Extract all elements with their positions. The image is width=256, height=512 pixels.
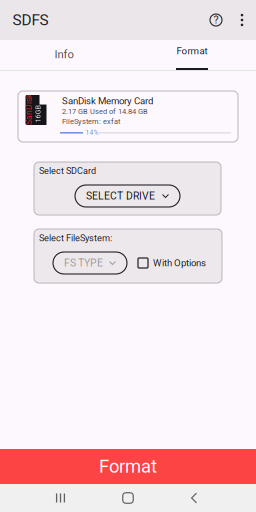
staticText: FileSystem: exfat [62, 117, 120, 126]
staticText: Select FileSystem: [39, 233, 112, 243]
staticText: ? [213, 13, 218, 26]
button[interactable]: FS TYPE [53, 252, 127, 274]
button[interactable]: Back [164, 484, 224, 512]
button[interactable]: Help [199, 0, 233, 40]
staticText: SELECT DRIVE [86, 190, 155, 202]
staticText: SanDisk Memory Card [62, 95, 153, 107]
button[interactable]: More options [227, 0, 256, 40]
staticText: Format [99, 456, 157, 477]
staticText: 16GB [29, 110, 46, 118]
staticText: 14% [85, 129, 98, 136]
staticText: SanDisk [13, 104, 44, 114]
button[interactable]: Format [0, 449, 256, 484]
staticText: Info [54, 48, 73, 61]
button[interactable]: Recents [18, 484, 103, 512]
staticText: SDFS [12, 11, 48, 29]
button[interactable]: SELECT DRIVE [75, 185, 180, 207]
staticText: Select SDCard [39, 166, 96, 176]
button[interactable]: With Options [138, 252, 206, 274]
staticText: 2.17 GB Used of 14.84 GB [62, 107, 148, 116]
button[interactable]: Format [128, 40, 256, 70]
staticText: FS TYPE [64, 257, 103, 269]
button[interactable]: Home [98, 484, 158, 512]
staticText: With Options [153, 257, 206, 269]
staticText: Format [176, 45, 207, 57]
button[interactable]: Info [0, 40, 128, 70]
